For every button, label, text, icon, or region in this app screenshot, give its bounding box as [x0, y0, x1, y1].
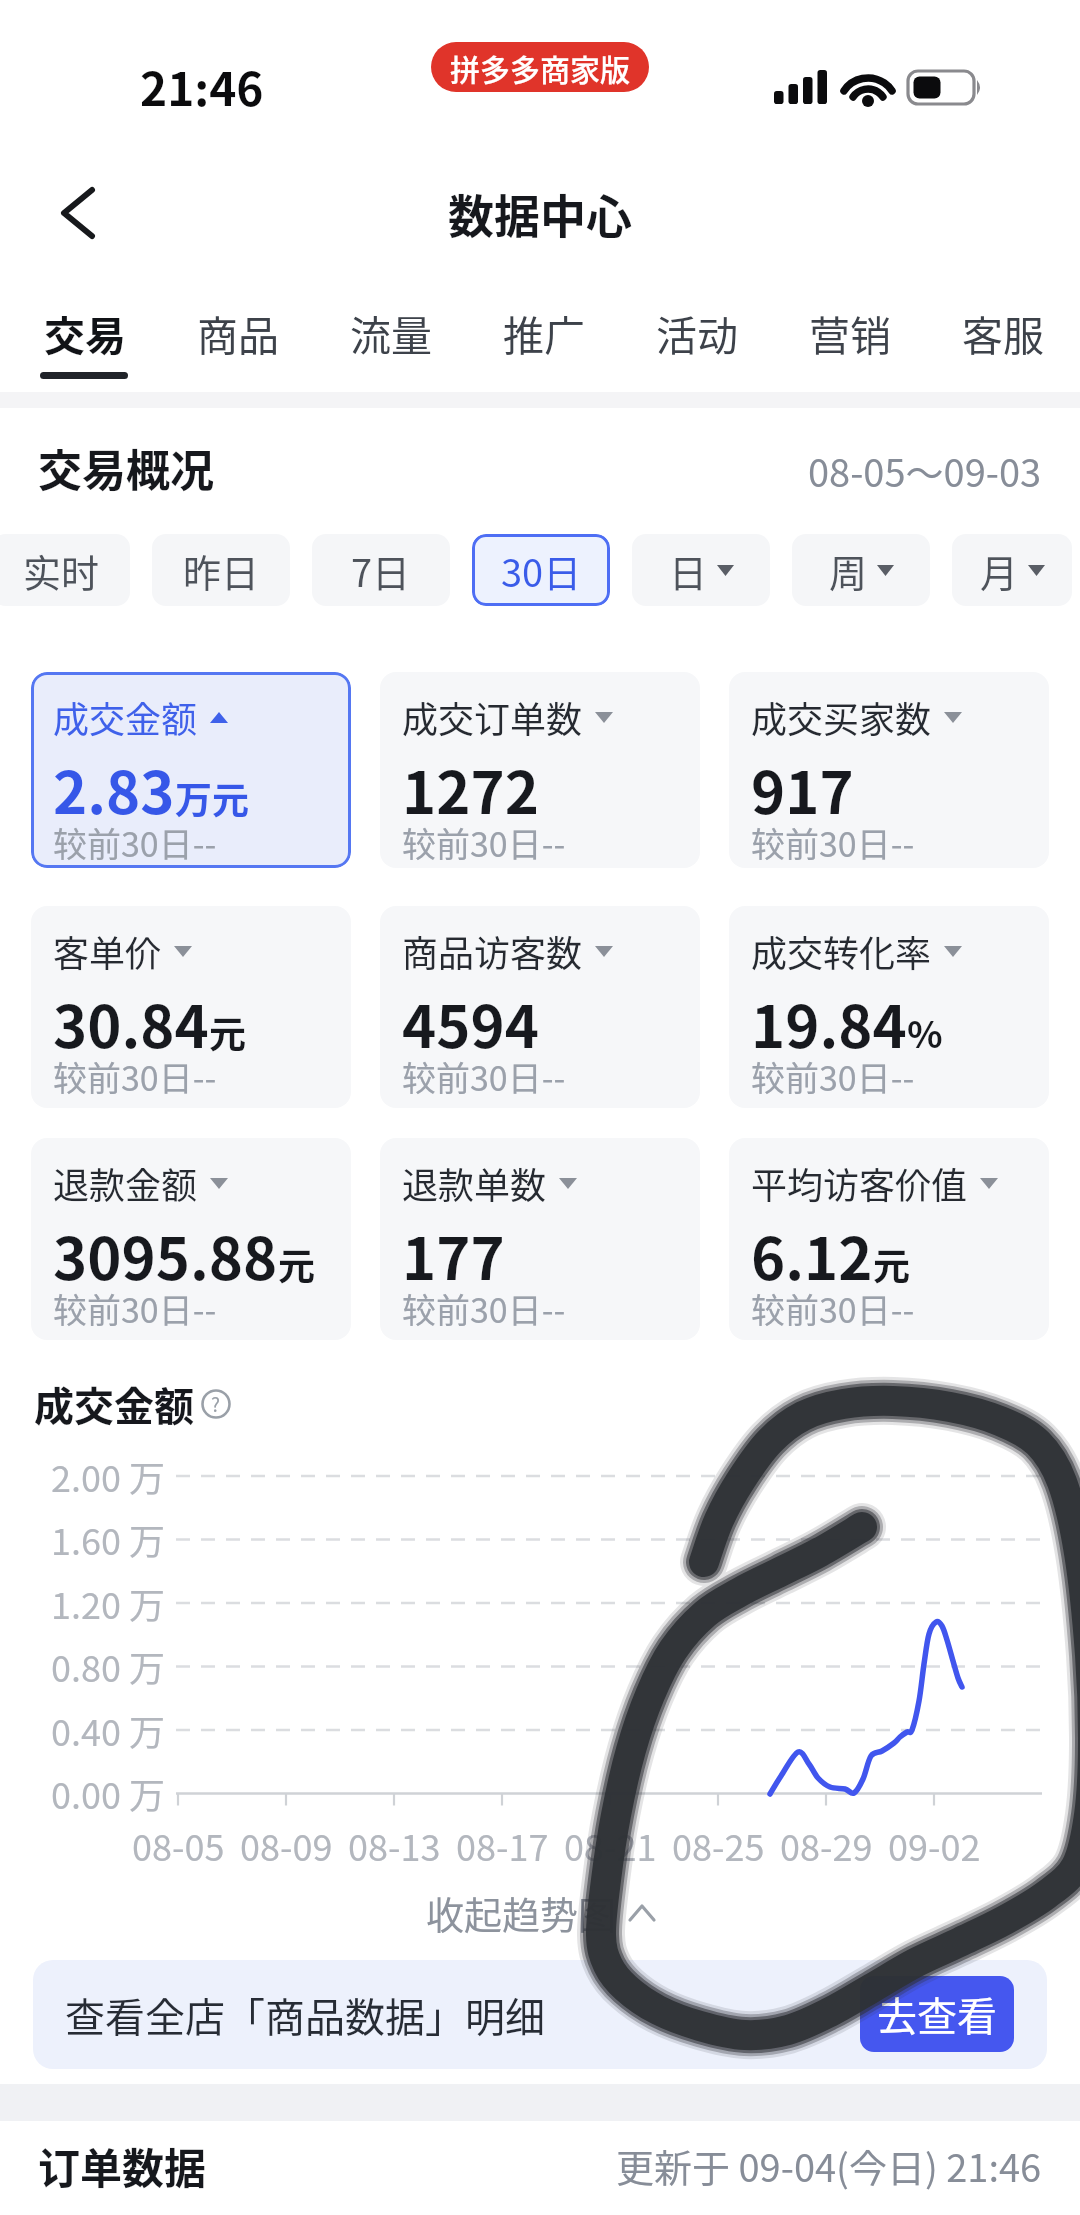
staticText: 较前30日--	[53, 818, 217, 867]
staticText: 较前30日--	[402, 1052, 566, 1101]
staticText: 退款金额	[53, 1157, 198, 1209]
staticText: %	[907, 1005, 943, 1059]
button[interactable]: 流量	[350, 302, 432, 362]
button[interactable]: 交易	[44, 302, 126, 362]
staticText: 6.12	[751, 1213, 873, 1297]
staticText: 08-29	[780, 1819, 873, 1871]
button[interactable]: 昨日	[152, 534, 290, 606]
button[interactable]: 去查看	[860, 1976, 1014, 2052]
staticText: 元	[278, 1237, 315, 1291]
button[interactable]: 退款金额	[31, 1138, 351, 1340]
button[interactable]: 日	[632, 534, 770, 606]
staticText: 09-02	[888, 1819, 981, 1871]
staticText: 去查看	[877, 1985, 997, 2043]
staticText: 08-17	[456, 1819, 549, 1871]
staticText: 活动	[656, 303, 738, 362]
staticText: 订单数据	[38, 2135, 207, 2196]
button[interactable]: 营销	[809, 302, 891, 362]
staticText: ?	[211, 1390, 221, 1418]
staticText: 收起趋势图	[426, 1885, 617, 1940]
button[interactable]: 成交订单数	[380, 672, 700, 868]
button[interactable]: 客单价	[31, 906, 351, 1108]
button[interactable]: 推广	[503, 302, 585, 362]
staticText: 成交金额	[53, 691, 198, 743]
staticText: 较前30日--	[53, 1052, 217, 1101]
staticText: 08-09	[240, 1819, 333, 1871]
staticText: 4594	[402, 981, 539, 1065]
button[interactable]: 商品	[197, 302, 279, 362]
staticText: 元	[209, 1005, 246, 1059]
staticText: 7日	[351, 543, 411, 598]
staticText: 08-05	[132, 1819, 225, 1871]
staticText: 成交金额	[34, 1375, 194, 1433]
staticText: 日	[669, 543, 708, 598]
button[interactable]: 活动	[656, 302, 738, 362]
button[interactable]: 成交金额	[31, 672, 351, 868]
button[interactable]: 客服	[962, 302, 1044, 362]
button[interactable]: 月	[952, 534, 1072, 606]
button[interactable]: 30日	[472, 534, 610, 606]
staticText: 成交转化率	[751, 925, 932, 977]
staticText: 较前30日--	[53, 1284, 217, 1333]
staticText: 周	[829, 543, 868, 598]
staticText: 客服	[962, 303, 1044, 362]
button[interactable]: 查看全店「商品数据」明细	[33, 1960, 1047, 2069]
staticText: 较前30日--	[751, 1284, 915, 1333]
staticText: 成交订单数	[402, 691, 583, 743]
staticText: 21:46	[140, 53, 264, 120]
staticText: 拼多多商家版	[450, 46, 630, 89]
staticText: 商品访客数	[402, 925, 583, 977]
staticText: 较前30日--	[751, 1052, 915, 1101]
button[interactable]: 平均访客价值	[729, 1138, 1049, 1340]
staticText: 0.40 万	[51, 1704, 166, 1756]
staticText: 2.00 万	[51, 1450, 166, 1502]
staticText: 交易概况	[38, 436, 214, 500]
staticText: 0.00 万	[51, 1767, 166, 1819]
staticText: 08-21	[564, 1819, 657, 1871]
staticText: 昨日	[183, 543, 260, 598]
staticText: 流量	[350, 303, 432, 362]
staticText: 917	[751, 747, 854, 831]
button[interactable]: 商品访客数	[380, 906, 700, 1108]
staticText: 较前30日--	[751, 818, 915, 867]
button[interactable]: 成交转化率	[729, 906, 1049, 1108]
staticText: 成交买家数	[751, 691, 932, 743]
staticText: 3095.88	[53, 1213, 278, 1297]
staticText: 19.84	[751, 981, 907, 1065]
button[interactable]: 7日	[312, 534, 450, 606]
staticText: 1.20 万	[51, 1577, 166, 1629]
staticText: 退款单数	[402, 1157, 547, 1209]
staticText: 营销	[809, 303, 891, 362]
staticText: 1272	[402, 747, 539, 831]
staticText: 30.84	[53, 981, 209, 1065]
staticText: 商品	[197, 303, 279, 362]
staticText: 推广	[503, 303, 585, 362]
button[interactable]: 实时	[0, 534, 130, 606]
button[interactable]: 成交买家数	[729, 672, 1049, 868]
staticText: 1.60 万	[51, 1513, 166, 1565]
staticText: 客单价	[53, 925, 162, 977]
staticText: 较前30日--	[402, 818, 566, 867]
staticText: 08-25	[672, 1819, 765, 1871]
staticText: 177	[402, 1213, 505, 1297]
staticText: 数据中心	[448, 180, 632, 247]
staticText: 实时	[23, 543, 100, 598]
staticText: 平均访客价值	[751, 1157, 968, 1209]
staticText: 元	[873, 1237, 910, 1291]
staticText: 万元	[175, 771, 249, 825]
staticText: 较前30日--	[402, 1284, 566, 1333]
button[interactable]	[40, 180, 110, 246]
staticText: 更新于 09-04(今日) 21:46	[616, 2138, 1042, 2193]
button[interactable]: 退款单数	[380, 1138, 700, 1340]
staticText: 08-05～09-03	[808, 443, 1042, 498]
button[interactable]: 收起趋势图	[426, 1885, 655, 1940]
staticText: 0.80 万	[51, 1640, 166, 1692]
staticText: 2.83	[53, 747, 175, 831]
staticText: 月	[980, 543, 1019, 598]
button[interactable]: 周	[792, 534, 930, 606]
staticText: 08-13	[348, 1819, 441, 1871]
staticText: 交易	[44, 303, 126, 362]
staticText: 查看全店「商品数据」明细	[65, 1986, 545, 2044]
staticText: 30日	[501, 543, 582, 598]
